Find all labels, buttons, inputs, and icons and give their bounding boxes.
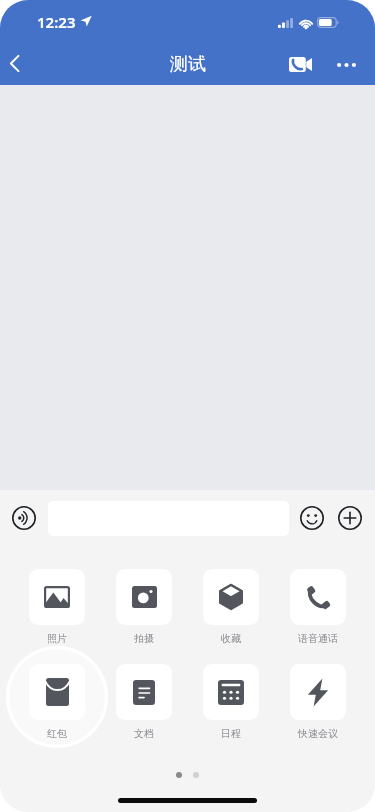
button[interactable]: More options xyxy=(329,44,363,85)
button[interactable]: 收藏 xyxy=(203,569,259,645)
staticText: 拍摄 xyxy=(134,632,154,645)
button[interactable]: 日程 xyxy=(203,664,259,740)
button[interactable]: 照片 xyxy=(29,569,85,645)
staticText: 日程 xyxy=(221,727,241,740)
button[interactable]: 快速会议 xyxy=(290,664,346,740)
staticText: 12:23 xyxy=(37,12,76,32)
button[interactable]: More xyxy=(330,498,370,538)
staticText: 文档 xyxy=(134,727,154,740)
staticText: 语音通话 xyxy=(298,632,338,645)
button[interactable]: Emoji xyxy=(292,498,332,538)
button[interactable]: 文档 xyxy=(116,664,172,740)
staticText: 照片 xyxy=(47,632,67,645)
staticText: 测试 xyxy=(170,53,206,76)
button[interactable]: Video call xyxy=(283,44,317,85)
staticText: 红包 xyxy=(47,727,67,740)
button[interactable]: 语音通话 xyxy=(290,569,346,645)
staticText: 收藏 xyxy=(221,632,241,645)
button[interactable]: Back xyxy=(0,44,29,85)
button[interactable]: Voice message xyxy=(4,498,44,538)
button[interactable]: 拍摄 xyxy=(116,569,172,645)
button[interactable]: 红包 xyxy=(29,664,85,740)
staticText: 快速会议 xyxy=(298,727,338,740)
